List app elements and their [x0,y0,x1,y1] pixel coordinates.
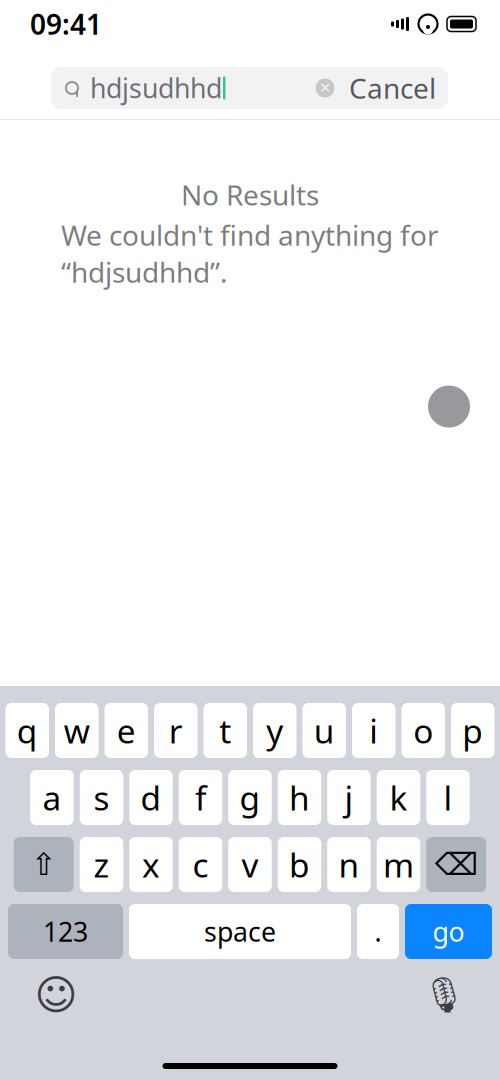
staticText: l [443,775,452,820]
button[interactable]: q [5,703,49,758]
button[interactable]: v [228,837,272,892]
button[interactable]: Dictation [422,973,466,1017]
staticText: No Results [181,176,319,213]
staticText: a [42,775,61,820]
staticText: ☺ [34,971,77,1018]
staticText: c [192,842,208,887]
staticText: j [344,775,353,820]
staticText: b [289,842,310,887]
button[interactable]: m [377,837,420,892]
button[interactable]: c [179,837,222,892]
button[interactable]: g [228,770,272,825]
staticText: hdjsudhhd [90,70,222,106]
staticText: k [389,775,407,820]
button[interactable]: Clear text [307,68,343,108]
staticText: 09:41 [30,5,102,43]
button[interactable]: i [352,703,395,758]
button[interactable]: Delete [426,837,486,892]
staticText: y [266,708,283,753]
button[interactable]: d [129,770,173,825]
button[interactable]: f [179,770,222,825]
button[interactable]: o [401,703,445,758]
button[interactable]: Shift [14,837,74,892]
staticText: d [140,775,161,820]
staticText: u [314,708,335,753]
button[interactable]: 123 [8,904,123,959]
button[interactable]: u [302,703,346,758]
staticText: r [169,708,183,753]
button[interactable]: s [80,770,123,825]
staticText: q [17,708,38,753]
staticText: p [462,708,483,753]
staticText: f [195,775,206,820]
button[interactable]: Emoji keyboard [34,973,78,1017]
button[interactable]: h [278,770,321,825]
staticText: z [93,842,109,887]
button[interactable]: z [80,837,123,892]
staticText: ⌫ [435,847,478,882]
staticText: We couldn't find anything for “hdjsudhhd… [61,216,439,291]
staticText: e [117,708,136,753]
button[interactable]: r [154,703,197,758]
staticText: o [413,708,433,753]
staticText: i [369,708,378,753]
staticText: x [142,842,160,887]
staticText: ⇧ [31,847,57,882]
staticText: m [383,842,414,887]
button[interactable]: go [405,904,492,959]
staticText: ✕ [319,80,331,96]
button[interactable]: b [278,837,321,892]
staticText: t [219,708,231,753]
button[interactable]: k [377,770,420,825]
button[interactable]: Cancel [343,67,448,109]
staticText: g [239,775,260,820]
staticText: go [432,914,464,949]
staticText: s [93,775,109,820]
button[interactable]: l [426,770,470,825]
button[interactable]: p [451,703,494,758]
staticText: 123 [43,914,88,949]
staticText: n [338,842,359,887]
button[interactable]: j [327,770,371,825]
button[interactable]: y [253,703,296,758]
staticText: . [374,914,381,949]
button[interactable]: w [55,703,98,758]
button[interactable]: n [327,837,371,892]
button[interactable]: space [129,904,351,959]
button[interactable]: . [357,904,399,959]
staticText: h [289,775,310,820]
button[interactable]: e [104,703,148,758]
button[interactable]: x [129,837,173,892]
staticText: 🎙 [422,975,466,1015]
button[interactable]: a [30,770,74,825]
staticText: Cancel [349,69,436,107]
staticText: v [241,842,258,887]
staticText: space [204,914,276,949]
button[interactable]: t [203,703,247,758]
staticText: w [64,708,90,753]
